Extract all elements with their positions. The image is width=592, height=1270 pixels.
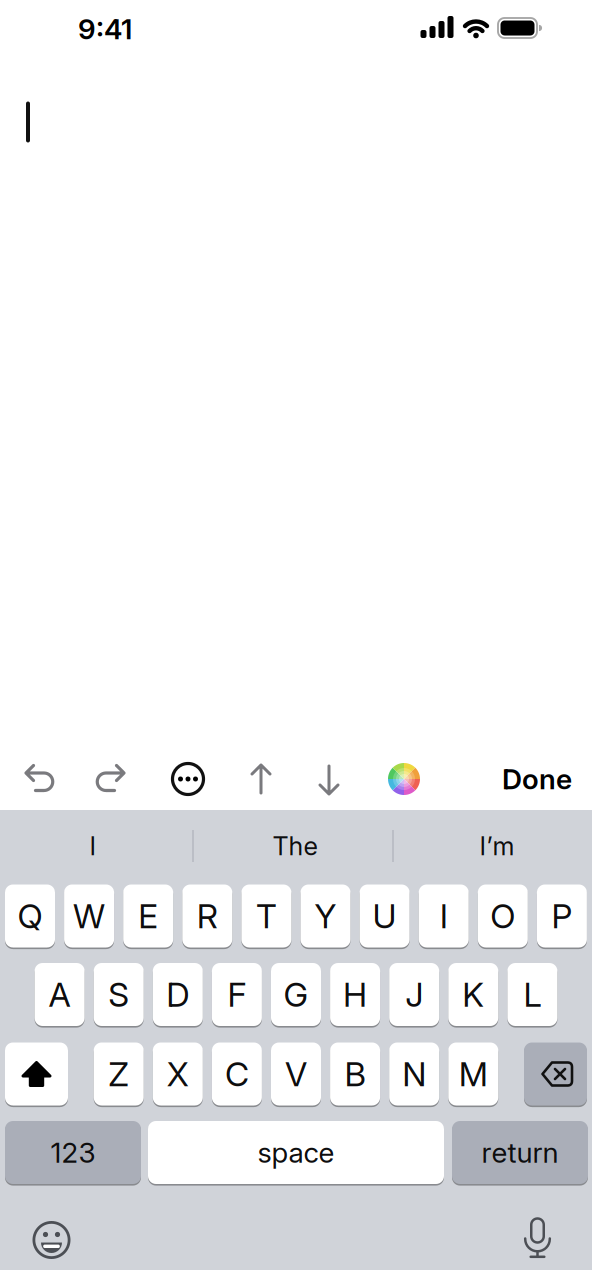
- button[interactable]: space: [148, 1120, 444, 1185]
- button[interactable]: [29, 1218, 73, 1262]
- button[interactable]: I’m: [407, 814, 587, 878]
- button[interactable]: P: [537, 883, 587, 948]
- button[interactable]: A: [35, 962, 85, 1027]
- staticText: K: [462, 975, 484, 1014]
- button[interactable]: X: [153, 1041, 203, 1106]
- button[interactable]: [89, 758, 133, 802]
- staticText: H: [343, 975, 367, 1014]
- button[interactable]: E: [123, 883, 173, 948]
- button[interactable]: [17, 758, 61, 802]
- staticText: S: [108, 975, 129, 1014]
- staticText: return: [481, 1136, 558, 1169]
- staticText: J: [405, 975, 423, 1014]
- button[interactable]: T: [241, 883, 291, 948]
- staticText: The: [272, 831, 317, 861]
- staticText: M: [459, 1054, 488, 1094]
- staticText: O: [490, 896, 515, 936]
- button[interactable]: Y: [300, 883, 350, 948]
- button[interactable]: [5, 1041, 68, 1106]
- button[interactable]: [524, 1041, 587, 1106]
- staticText: T: [256, 896, 277, 936]
- button[interactable]: M: [448, 1041, 498, 1106]
- button[interactable]: Done: [502, 762, 572, 795]
- button[interactable]: I: [419, 883, 469, 948]
- staticText: P: [551, 896, 572, 936]
- button[interactable]: G: [271, 962, 321, 1027]
- button[interactable]: D: [153, 962, 203, 1027]
- staticText: B: [345, 1054, 366, 1094]
- button[interactable]: [515, 1217, 559, 1261]
- staticText: V: [285, 1054, 307, 1094]
- button[interactable]: O: [478, 883, 528, 948]
- button[interactable]: C: [212, 1041, 262, 1106]
- button[interactable]: return: [452, 1120, 588, 1185]
- button[interactable]: N: [389, 1041, 439, 1106]
- staticText: I: [440, 896, 448, 936]
- staticText: I’m: [479, 831, 514, 861]
- button[interactable]: R: [182, 883, 232, 948]
- button[interactable]: U: [360, 883, 410, 948]
- button[interactable]: V: [271, 1041, 321, 1106]
- staticText: A: [49, 975, 71, 1014]
- button[interactable]: F: [212, 962, 262, 1027]
- staticText: 123: [50, 1136, 95, 1169]
- staticText: U: [373, 896, 397, 936]
- button[interactable]: B: [330, 1041, 380, 1106]
- button[interactable]: [382, 757, 426, 801]
- button[interactable]: S: [94, 962, 144, 1027]
- staticText: G: [283, 975, 308, 1014]
- staticText: E: [138, 896, 158, 936]
- button[interactable]: H: [330, 962, 380, 1027]
- staticText: N: [402, 1054, 426, 1094]
- button[interactable]: [307, 758, 351, 802]
- staticText: Z: [108, 1054, 129, 1094]
- staticText: D: [166, 975, 189, 1014]
- staticText: X: [167, 1054, 189, 1094]
- button[interactable]: J: [389, 962, 439, 1027]
- staticText: I: [89, 831, 96, 861]
- button[interactable]: W: [64, 883, 114, 948]
- button[interactable]: [239, 757, 283, 801]
- button[interactable]: The: [205, 814, 385, 878]
- staticText: R: [197, 896, 218, 936]
- button[interactable]: I: [3, 814, 183, 878]
- staticText: L: [523, 975, 541, 1014]
- staticText: Done: [502, 762, 572, 795]
- button[interactable]: L: [507, 962, 557, 1027]
- staticText: C: [225, 1054, 249, 1094]
- staticText: W: [73, 896, 105, 936]
- staticText: Y: [314, 896, 336, 936]
- button[interactable]: Z: [94, 1041, 144, 1106]
- staticText: F: [227, 975, 246, 1014]
- button[interactable]: 123: [5, 1120, 141, 1185]
- staticText: space: [257, 1136, 334, 1169]
- button[interactable]: Q: [5, 883, 55, 948]
- staticText: Q: [17, 896, 42, 936]
- button[interactable]: [166, 757, 210, 801]
- button[interactable]: K: [448, 962, 498, 1027]
- staticText: 9:41: [78, 12, 132, 45]
